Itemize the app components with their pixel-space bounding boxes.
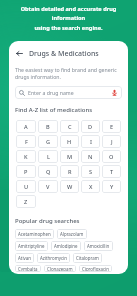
staticText: E bbox=[110, 123, 114, 131]
staticText: Acetaminophen bbox=[18, 231, 51, 237]
staticText: Amitriptyline bbox=[18, 243, 45, 249]
button[interactable]: K bbox=[16, 150, 36, 163]
staticText: M bbox=[67, 153, 73, 161]
staticText: Enter a drug name bbox=[28, 89, 111, 96]
staticText: Z bbox=[24, 198, 28, 206]
button[interactable]: Amitriptyline bbox=[15, 241, 48, 251]
staticText: I bbox=[90, 138, 92, 146]
staticText: Azithromycin bbox=[40, 255, 67, 261]
button[interactable]: Citalopram bbox=[73, 253, 102, 263]
staticText: R bbox=[68, 168, 72, 176]
button[interactable]: A bbox=[16, 120, 36, 133]
staticText: Ativan bbox=[18, 255, 31, 261]
button[interactable]: G bbox=[38, 135, 58, 148]
staticText: A bbox=[24, 123, 28, 131]
staticText: W bbox=[67, 183, 73, 191]
button[interactable]: V bbox=[38, 180, 58, 193]
staticText: Drugs & Medications bbox=[29, 49, 99, 59]
button[interactable]: L bbox=[38, 150, 58, 163]
staticText: F bbox=[25, 138, 28, 146]
staticText: Find A-Z list of medications bbox=[15, 106, 93, 114]
button[interactable]: Ativan bbox=[15, 253, 34, 263]
button[interactable]: Amoxicillin bbox=[84, 241, 113, 251]
button[interactable]: X bbox=[81, 180, 100, 193]
button[interactable]: Amlodipine bbox=[51, 241, 81, 251]
staticText: Amlodipine bbox=[54, 243, 78, 249]
button[interactable]: Cymbalta bbox=[15, 265, 41, 272]
button[interactable]: M bbox=[60, 150, 79, 163]
button[interactable]: Z bbox=[16, 195, 36, 208]
button[interactable]: R bbox=[60, 165, 79, 178]
staticText: Amoxicillin bbox=[87, 243, 110, 249]
staticText: Q bbox=[46, 168, 51, 176]
staticText: Clonazepam bbox=[47, 266, 73, 272]
button[interactable]: U bbox=[16, 180, 36, 193]
staticText: Obtain detailed and accurate drug inform… bbox=[6, 5, 131, 22]
staticText: Cymbalta bbox=[18, 266, 38, 272]
button[interactable]: T bbox=[102, 165, 121, 178]
staticText: O bbox=[109, 153, 114, 161]
button[interactable]: Alprazolam bbox=[57, 229, 87, 239]
staticText: P bbox=[24, 168, 28, 176]
button[interactable]: B bbox=[38, 120, 58, 133]
staticText: D bbox=[88, 123, 93, 131]
button[interactable]: N bbox=[81, 150, 100, 163]
staticText: H bbox=[67, 138, 72, 146]
button[interactable]: H bbox=[60, 135, 79, 148]
button[interactable]: E bbox=[102, 120, 121, 133]
staticText: K bbox=[24, 153, 28, 161]
staticText: Ciprofloxacin bbox=[82, 266, 109, 272]
staticText: Citalopram bbox=[76, 255, 99, 261]
button[interactable]: Y bbox=[102, 180, 121, 193]
button[interactable]: Acetaminophen bbox=[15, 229, 54, 239]
button[interactable]: Enter a drug name bbox=[15, 86, 122, 99]
staticText: C bbox=[68, 123, 72, 131]
staticText: L bbox=[47, 153, 50, 161]
button[interactable]: P bbox=[16, 165, 36, 178]
button[interactable]: Azithromycin bbox=[37, 253, 70, 263]
staticText: The easiest way to find brand and generi… bbox=[15, 66, 117, 80]
button[interactable]: W bbox=[60, 180, 79, 193]
button[interactable]: F bbox=[16, 135, 36, 148]
staticText: N bbox=[88, 153, 93, 161]
staticText: using the search engine. bbox=[0, 24, 137, 32]
button[interactable]: I bbox=[81, 135, 100, 148]
staticText: V bbox=[46, 183, 50, 191]
staticText: Popular drug searches bbox=[15, 217, 80, 225]
staticText: X bbox=[89, 183, 93, 191]
staticText: G bbox=[46, 138, 51, 146]
staticText: Alprazolam bbox=[60, 231, 84, 237]
button[interactable]: Clonazepam bbox=[44, 265, 76, 272]
button[interactable]: Q bbox=[38, 165, 58, 178]
button[interactable]: S bbox=[81, 165, 100, 178]
button[interactable]: Voice search bbox=[111, 89, 118, 96]
button[interactable]: D bbox=[81, 120, 100, 133]
button[interactable]: C bbox=[60, 120, 79, 133]
button[interactable]: J bbox=[102, 135, 121, 148]
button[interactable]: Ciprofloxacin bbox=[79, 265, 112, 272]
button[interactable]: O bbox=[102, 150, 121, 163]
staticText: Y bbox=[110, 183, 114, 191]
staticText: B bbox=[46, 123, 50, 131]
staticText: U bbox=[24, 183, 29, 191]
button[interactable]: Back bbox=[14, 48, 25, 59]
staticText: J bbox=[111, 138, 113, 146]
staticText: T bbox=[110, 168, 114, 176]
staticText: S bbox=[89, 168, 93, 176]
